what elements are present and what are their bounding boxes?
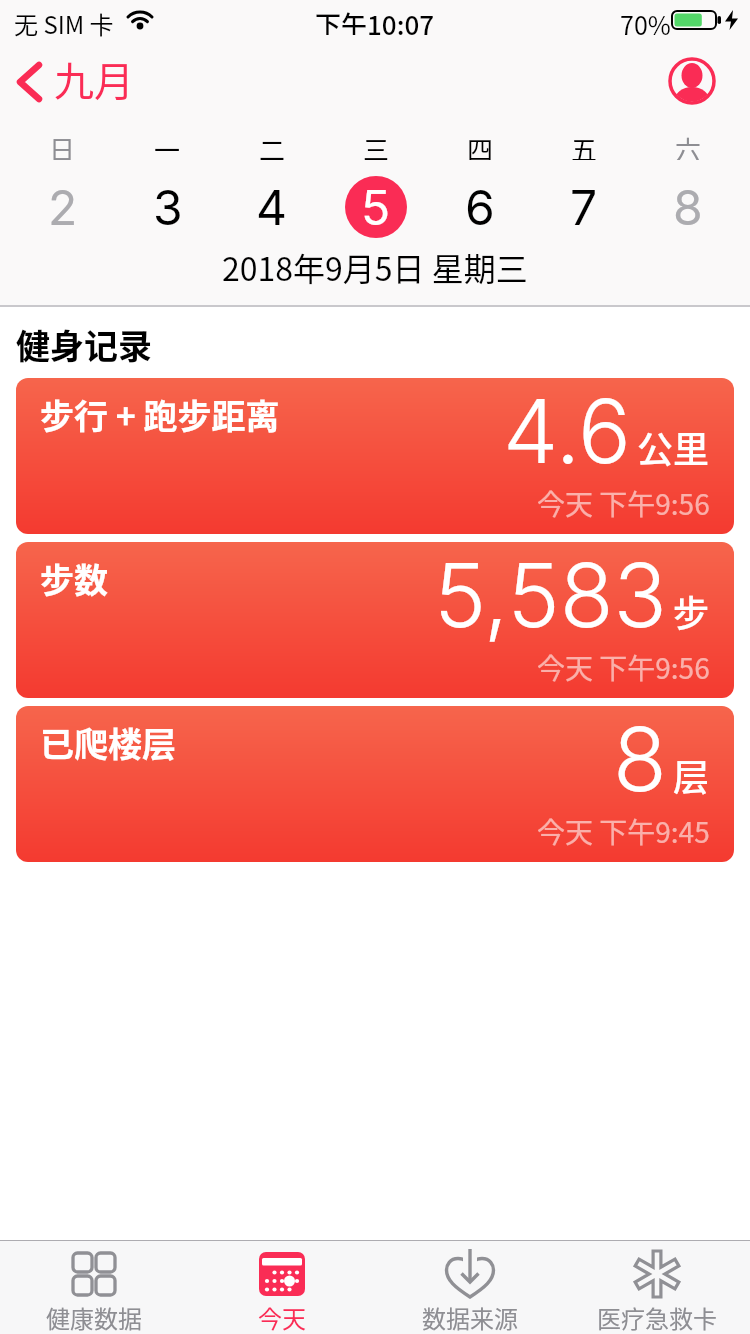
button[interactable]: 数据来源 xyxy=(376,1240,564,1334)
staticText: 3 xyxy=(153,178,183,236)
staticText: 2018年9月5日 星期三 xyxy=(222,244,528,288)
staticText: 已爬楼层 xyxy=(40,718,176,767)
button[interactable]: 医疗急救卡 xyxy=(564,1240,750,1334)
staticText: 健康数据 xyxy=(46,1300,142,1334)
staticText: 九月 xyxy=(54,50,134,108)
button[interactable]: 6 xyxy=(428,176,532,238)
staticText: 步 xyxy=(673,585,710,637)
staticText: 健身记录 xyxy=(16,320,152,369)
button[interactable]: 4 xyxy=(220,176,324,238)
staticText: 7 xyxy=(570,178,598,236)
staticText: 今天 下午9:56 xyxy=(537,647,710,688)
staticText: 层 xyxy=(673,749,710,801)
staticText: 今天 下午9:56 xyxy=(537,483,710,524)
button[interactable]: 步行 + 跑步距离 xyxy=(16,378,734,534)
staticText: 四 xyxy=(467,130,494,160)
staticText: 2 xyxy=(48,178,78,236)
staticText: 五 xyxy=(571,130,598,160)
staticText: 今天 下午9:45 xyxy=(537,811,710,852)
staticText: 步行 + 跑步距离 xyxy=(40,390,280,439)
staticText: 今天 xyxy=(258,1300,306,1334)
button[interactable]: 已爬楼层 xyxy=(16,706,734,862)
staticText: 公里 xyxy=(637,421,710,473)
staticText: 三 xyxy=(363,130,390,160)
button[interactable]: 5 xyxy=(324,176,428,238)
staticText: 六 xyxy=(675,130,702,160)
staticText: 6 xyxy=(465,178,495,236)
button[interactable]: 健康数据 xyxy=(0,1240,188,1334)
button[interactable]: 7 xyxy=(532,176,636,238)
staticText: 一 xyxy=(154,130,181,160)
staticText: 步数 xyxy=(40,554,108,603)
staticText: 医疗急救卡 xyxy=(597,1300,717,1334)
staticText: 8 xyxy=(673,178,703,236)
staticText: 70% xyxy=(620,6,671,42)
button[interactable]: 2 xyxy=(10,176,115,238)
staticText: 无 SIM 卡 xyxy=(14,6,114,41)
button[interactable]: 8 xyxy=(636,176,740,238)
staticText: 二 xyxy=(259,130,286,160)
button[interactable] xyxy=(668,57,716,105)
staticText: 数据来源 xyxy=(422,1300,518,1334)
button[interactable]: 九月 xyxy=(0,48,200,112)
staticText: 下午10:07 xyxy=(315,5,435,35)
button[interactable]: 3 xyxy=(115,176,220,238)
staticText: 4.6 xyxy=(503,378,631,484)
staticText: 5 xyxy=(361,178,391,236)
button[interactable]: 步数 xyxy=(16,542,734,698)
button[interactable]: 今天 xyxy=(188,1240,376,1334)
staticText: 4 xyxy=(256,178,288,236)
staticText: 8 xyxy=(613,706,667,812)
staticText: 5,583 xyxy=(434,542,667,648)
staticText: 日 xyxy=(49,130,76,160)
